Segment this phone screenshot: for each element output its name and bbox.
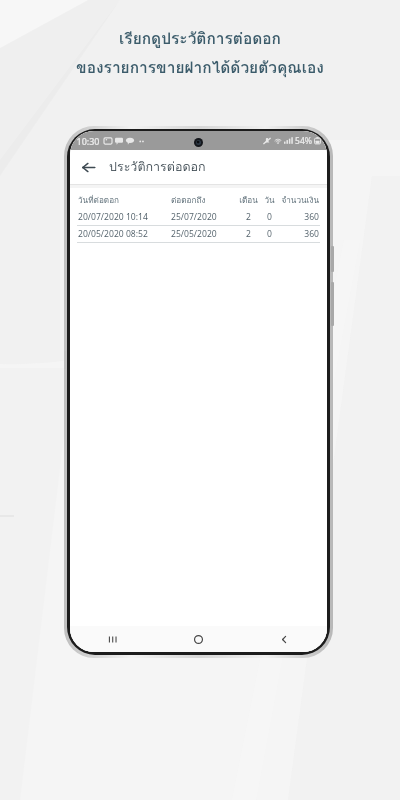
staticText: 20/05/2020 08:52: [78, 228, 148, 240]
staticText: 0: [267, 228, 272, 240]
button[interactable]: Home: [155, 626, 241, 652]
staticText: เรียกดูประวัติการต่อดอก: [119, 26, 281, 51]
button[interactable]: Recents: [70, 626, 155, 652]
staticText: เดือน: [239, 194, 258, 207]
staticText: ประวัติการต่อดอก: [109, 157, 206, 177]
staticText: จำนวนเงิน: [281, 194, 319, 207]
button[interactable]: 20/05/2020 08:52: [70, 226, 327, 242]
button[interactable]: Back: [74, 153, 102, 181]
staticText: 360: [304, 228, 319, 240]
staticText: 2: [246, 211, 251, 223]
staticText: 2: [246, 228, 251, 240]
button[interactable]: 20/07/2020 10:14: [70, 209, 327, 225]
staticText: 360: [304, 211, 319, 223]
staticText: 0: [267, 211, 272, 223]
staticText: วัน: [264, 194, 275, 207]
staticText: ต่อดอกถึง: [171, 194, 206, 207]
staticText: 54%: [295, 135, 312, 147]
staticText: 10:30: [76, 135, 100, 147]
staticText: 25/05/2020: [171, 228, 217, 240]
staticText: ของรายการขายฝากได้ด้วยตัวคุณเอง: [76, 55, 324, 80]
staticText: 20/07/2020 10:14: [78, 211, 148, 223]
button[interactable]: Back: [241, 626, 327, 652]
staticText: วันที่ต่อดอก: [78, 194, 120, 207]
staticText: 25/07/2020: [171, 211, 217, 223]
